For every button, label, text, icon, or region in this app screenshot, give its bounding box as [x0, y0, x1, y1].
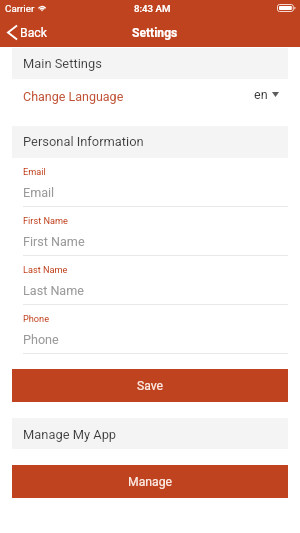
staticText: 8:43 AM — [134, 3, 171, 14]
staticText: Carrier — [5, 3, 35, 14]
staticText: Main Settings — [23, 56, 102, 71]
button[interactable]: Save — [12, 369, 288, 402]
button[interactable]: Manage — [12, 465, 288, 498]
staticText: Phone — [23, 332, 59, 347]
staticText: Change Language — [23, 89, 124, 104]
staticText: First Name — [23, 234, 85, 249]
staticText: Phone — [23, 313, 50, 324]
staticText: Manage — [128, 475, 172, 489]
staticText: Email — [23, 166, 46, 177]
staticText: Manage My App — [23, 427, 117, 442]
staticText: Personal Information — [23, 134, 144, 149]
button[interactable]: Back — [0, 20, 50, 47]
button[interactable]: Change Language — [0, 79, 300, 126]
staticText: Last Name — [23, 283, 84, 298]
staticText: Back — [20, 26, 48, 40]
staticText: First Name — [23, 215, 68, 226]
staticText: Last Name — [23, 264, 68, 275]
staticText: en — [254, 87, 268, 102]
staticText: Save — [137, 379, 164, 393]
staticText: Settings — [132, 26, 178, 40]
staticText: Email — [23, 185, 55, 200]
